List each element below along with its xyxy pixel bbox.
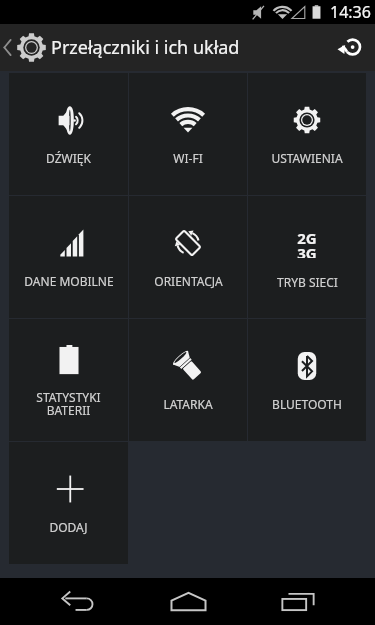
staticText: ORIENTACJA: [154, 273, 223, 289]
button[interactable]: Reset: [331, 24, 375, 71]
button[interactable]: WI-FI: [129, 73, 247, 195]
staticText: WI-FI: [173, 150, 203, 166]
button[interactable]: BLUETOOTH: [248, 319, 366, 441]
button[interactable]: LATARKA: [129, 319, 247, 441]
staticText: 2G 3G: [297, 228, 317, 258]
staticText: 14:36: [330, 1, 371, 23]
staticText: TRYB SIECI: [277, 274, 338, 290]
button[interactable]: DANE MOBILNE: [9, 196, 128, 318]
staticText: USTAWIENIA: [271, 150, 343, 166]
button[interactable]: DODAJ: [9, 442, 128, 564]
button[interactable]: DŹWIĘK: [9, 73, 128, 195]
button[interactable]: Recents: [265, 578, 331, 625]
staticText: DŹWIĘK: [46, 150, 91, 166]
button[interactable]: USTAWIENIA: [248, 73, 366, 195]
staticText: Przełączniki i ich układ: [51, 35, 240, 60]
staticText: BLUETOOTH: [272, 396, 342, 412]
button[interactable]: STATYSTYKI BATERII: [9, 319, 128, 441]
staticText: STATYSTYKI BATERII: [36, 389, 101, 419]
staticText: DANE MOBILNE: [24, 273, 114, 289]
button[interactable]: ORIENTACJA: [129, 196, 247, 318]
staticText: DODAJ: [49, 519, 88, 535]
button[interactable]: Navigate up: [0, 33, 248, 62]
button[interactable]: Back: [44, 578, 110, 625]
button[interactable]: 2G 3G: [248, 196, 366, 318]
button[interactable]: Home: [155, 578, 221, 625]
staticText: LATARKA: [163, 396, 213, 412]
